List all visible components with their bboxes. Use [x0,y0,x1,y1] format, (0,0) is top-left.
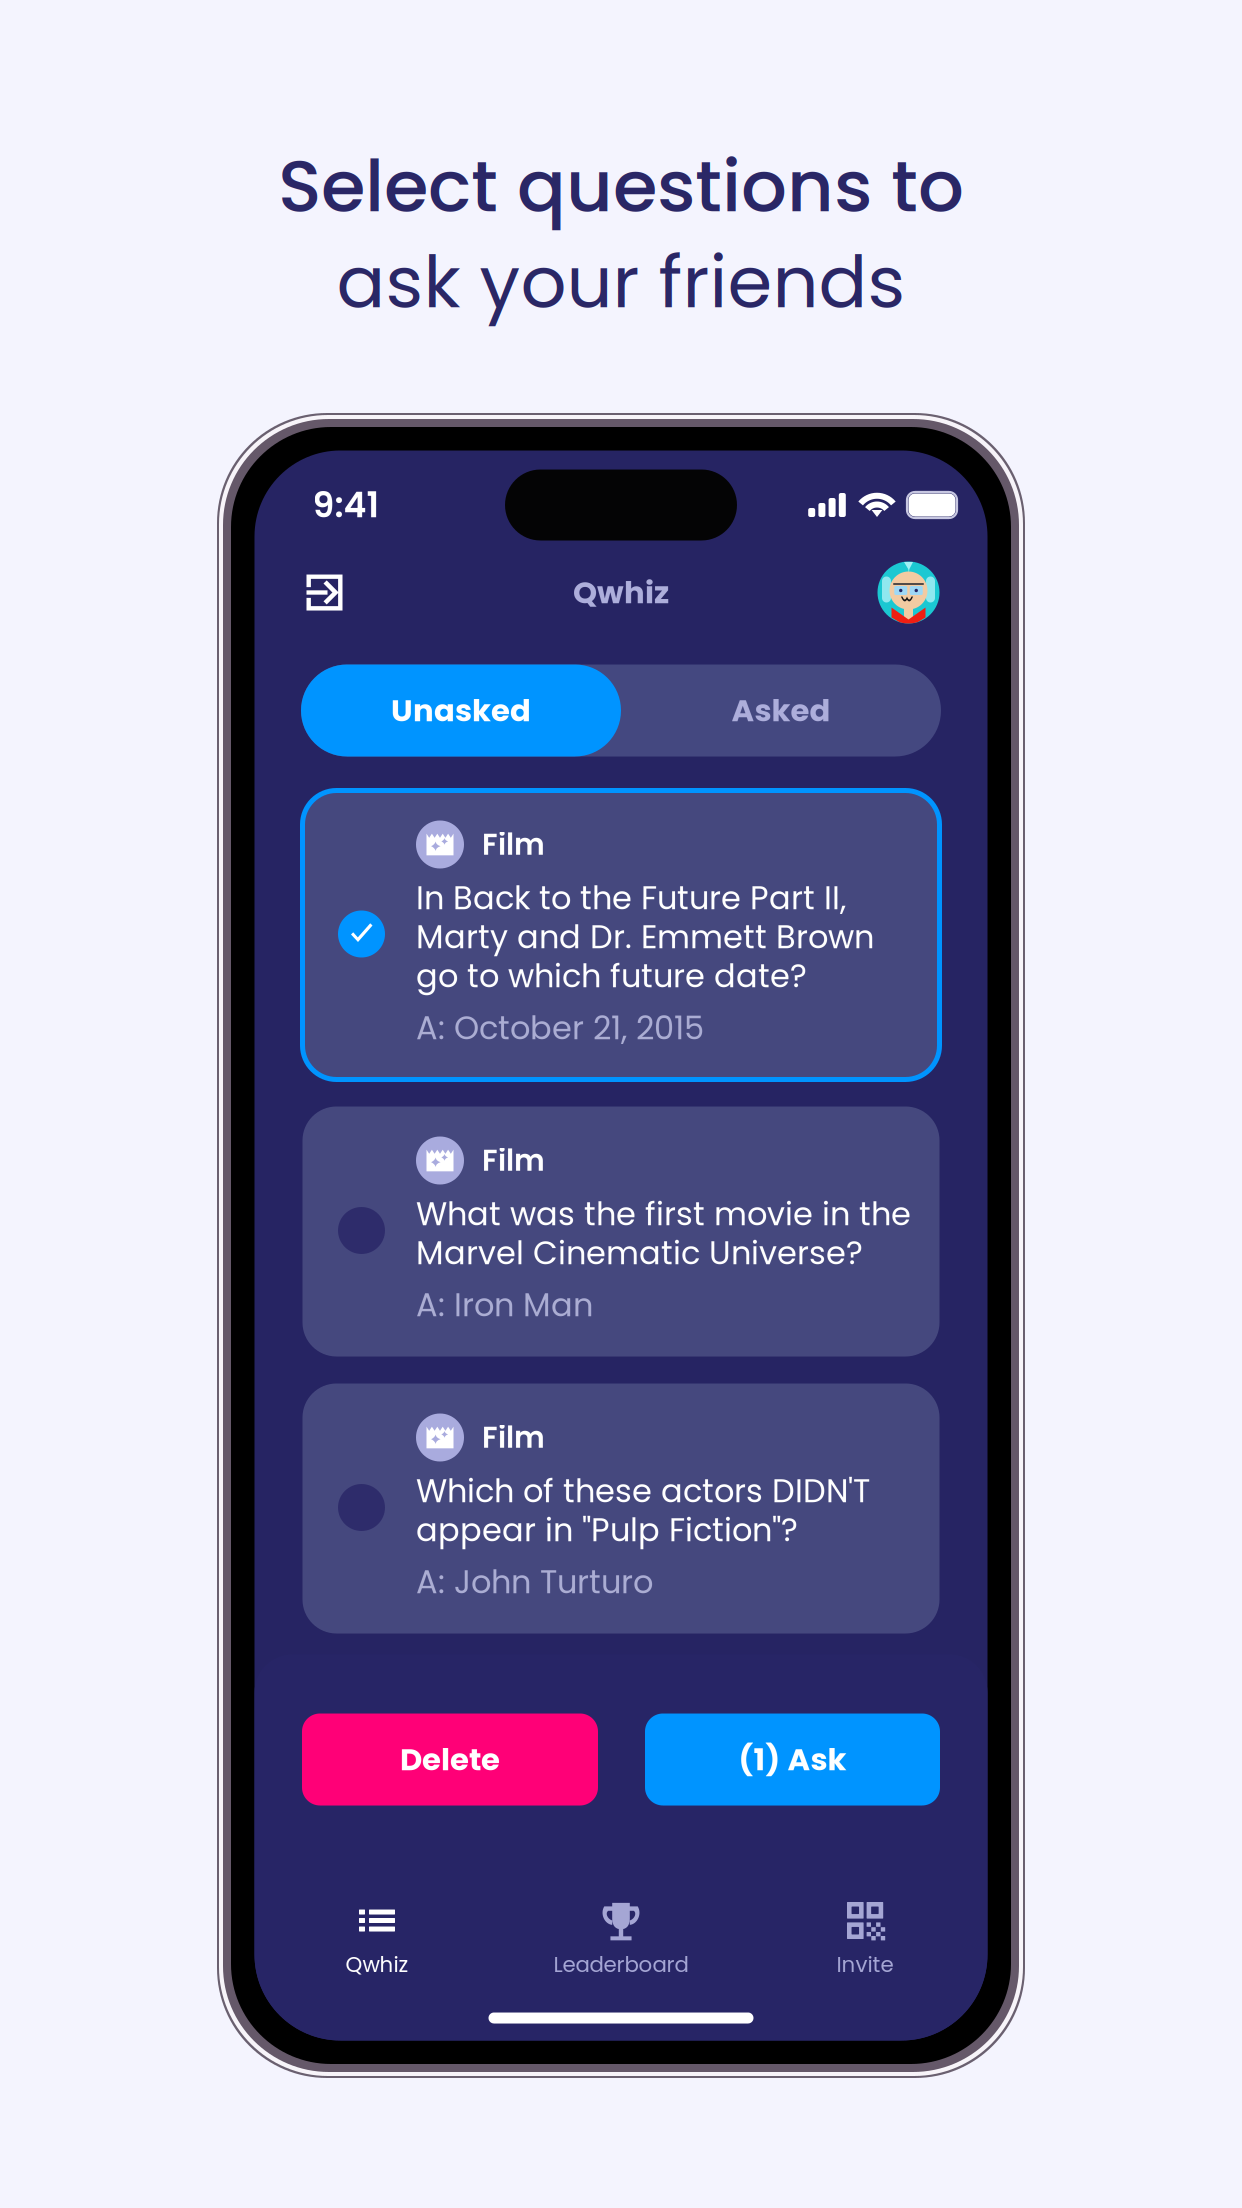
button[interactable]: (1) Ask [645,1713,940,1805]
button[interactable]: Delete [302,1713,598,1805]
button[interactable]: Film [302,790,939,1079]
staticText: Qwhiz [573,571,669,614]
staticText: A: John Turturo [416,1560,653,1604]
staticText: In Back to the Future Part II, [416,876,846,920]
button[interactable]: Film [302,1383,939,1633]
staticText: Delete [400,1738,500,1781]
button[interactable]: Sign out [306,574,342,610]
button[interactable]: Asked [621,664,941,756]
button[interactable]: Profile [877,561,939,623]
staticText: Unasked [391,689,531,732]
button[interactable]: Unasked [301,664,621,756]
staticText: Leaderboard [553,1950,688,1979]
staticText: A: Iron Man [416,1283,593,1327]
staticText: A: October 21, 2015 [416,1006,704,1050]
button[interactable]: Invite [743,1898,987,1979]
button[interactable]: Leaderboard [499,1898,743,1979]
staticText: 9:41 [312,481,379,529]
staticText: appear in "Pulp Fiction"? [416,1508,798,1552]
staticText: Qwhiz [345,1950,408,1979]
staticText: Marty and Dr. Emmett Brown [416,915,874,959]
staticText: What was the first movie in the [416,1192,911,1236]
staticText: Film [482,824,545,865]
staticText: go to which future date? [416,954,807,998]
staticText: Film [482,1417,545,1458]
staticText: Film [482,1140,545,1181]
button[interactable]: Film [302,1106,939,1356]
staticText: Invite [836,1950,893,1979]
staticText: Select questions to [278,136,964,236]
staticText: Marvel Cinematic Universe? [416,1231,863,1275]
button[interactable]: Qwhiz [255,1898,499,1979]
staticText: Which of these actors DIDN'T [416,1469,870,1513]
staticText: (1) Ask [738,1738,846,1781]
staticText: Asked [731,689,830,732]
staticText: ask your friends [336,232,905,332]
